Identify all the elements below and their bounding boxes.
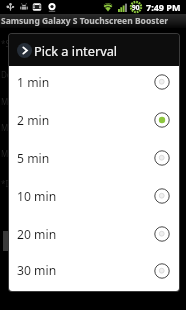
button[interactable]: 30 min <box>9 253 179 288</box>
other: Selected <box>154 112 170 128</box>
staticText: Double tap to sleep <box>1 69 75 80</box>
staticText: *Interval of check <box>1 178 68 189</box>
staticText: 2 min <box>17 112 50 129</box>
other: Not selected <box>154 226 170 242</box>
button[interactable]: 10 min <box>9 177 179 215</box>
staticText: Move sensitivity <box>1 96 61 107</box>
staticText: 20 min <box>17 226 57 243</box>
button[interactable]: 2 min <box>9 101 179 139</box>
button[interactable]: 1 min <box>9 66 179 101</box>
staticText: Samsung Galaxy S Touchscreen Booster <box>1 15 169 27</box>
staticText: 90 <box>132 3 140 12</box>
staticText: Multi touch count <box>1 122 68 133</box>
other: Not selected <box>154 74 170 90</box>
staticText: Pick a interval <box>34 42 118 59</box>
staticText: 5 min <box>17 150 50 167</box>
staticText: 1 min <box>17 74 50 91</box>
other: Not selected <box>154 188 170 204</box>
staticText: 7:49 PM <box>146 1 181 13</box>
button[interactable]: 20 min <box>9 215 179 253</box>
button[interactable]: Open <box>9 34 179 66</box>
button[interactable]: 5 min <box>9 139 179 177</box>
other: Not selected <box>154 150 170 166</box>
other: Not selected <box>154 263 170 279</box>
staticText: 30 min <box>17 262 57 279</box>
staticText: Max touch points <box>1 148 67 159</box>
staticText: *Shake to wake up <box>1 38 72 49</box>
staticText: 10 min <box>17 188 57 205</box>
other: Open <box>17 43 32 58</box>
